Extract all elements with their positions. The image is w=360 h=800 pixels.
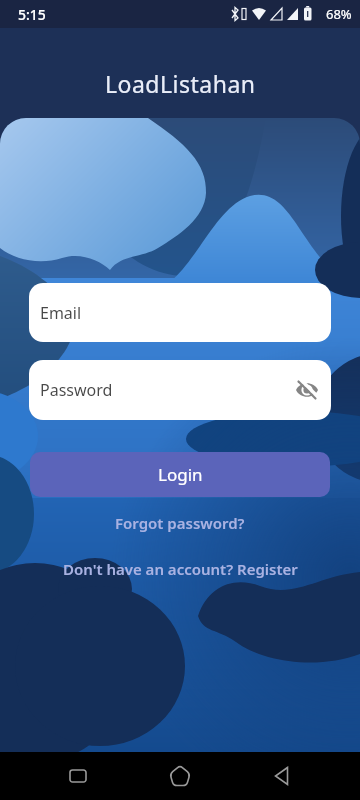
staticText: Login (158, 463, 203, 486)
staticText: Password (40, 379, 295, 401)
button[interactable]: Password (29, 360, 331, 420)
staticText: 68% (326, 5, 352, 23)
button[interactable]: Login (30, 452, 330, 497)
button[interactable]: Don't have an account? Register (63, 559, 298, 579)
staticText: Don't have an account? Register (63, 559, 298, 579)
staticText: LoadListahan (105, 68, 256, 99)
button[interactable]: Email (29, 283, 331, 342)
staticText: Forgot password? (115, 513, 245, 533)
button[interactable] (258, 752, 306, 800)
button[interactable] (156, 752, 204, 800)
staticText: Email (40, 302, 82, 324)
button[interactable] (54, 752, 102, 800)
staticText: 5:15 (18, 5, 46, 24)
button[interactable]: Forgot password? (115, 513, 245, 533)
